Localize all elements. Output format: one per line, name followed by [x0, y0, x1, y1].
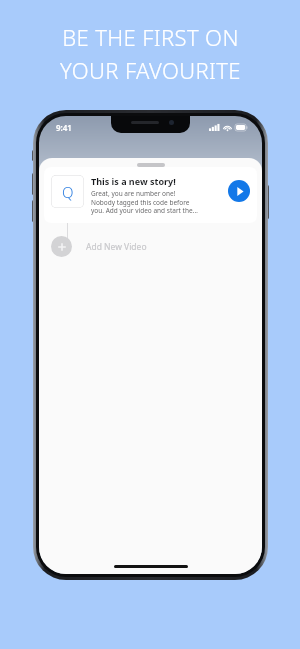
staticText: Add New Video	[86, 241, 147, 253]
staticText: YOUR FAVOURITE	[60, 55, 241, 85]
staticText: BE THE FIRST ON	[62, 22, 239, 52]
button[interactable]: Add New Video	[39, 234, 262, 261]
button[interactable]: Play story	[228, 180, 250, 202]
staticText: This is a new story!	[91, 175, 176, 187]
staticText: 9:41	[56, 122, 72, 133]
staticText: Q	[62, 182, 74, 202]
button[interactable]: Q	[44, 167, 257, 223]
staticText: Great, you are number one! Nobody tagged…	[91, 189, 198, 215]
